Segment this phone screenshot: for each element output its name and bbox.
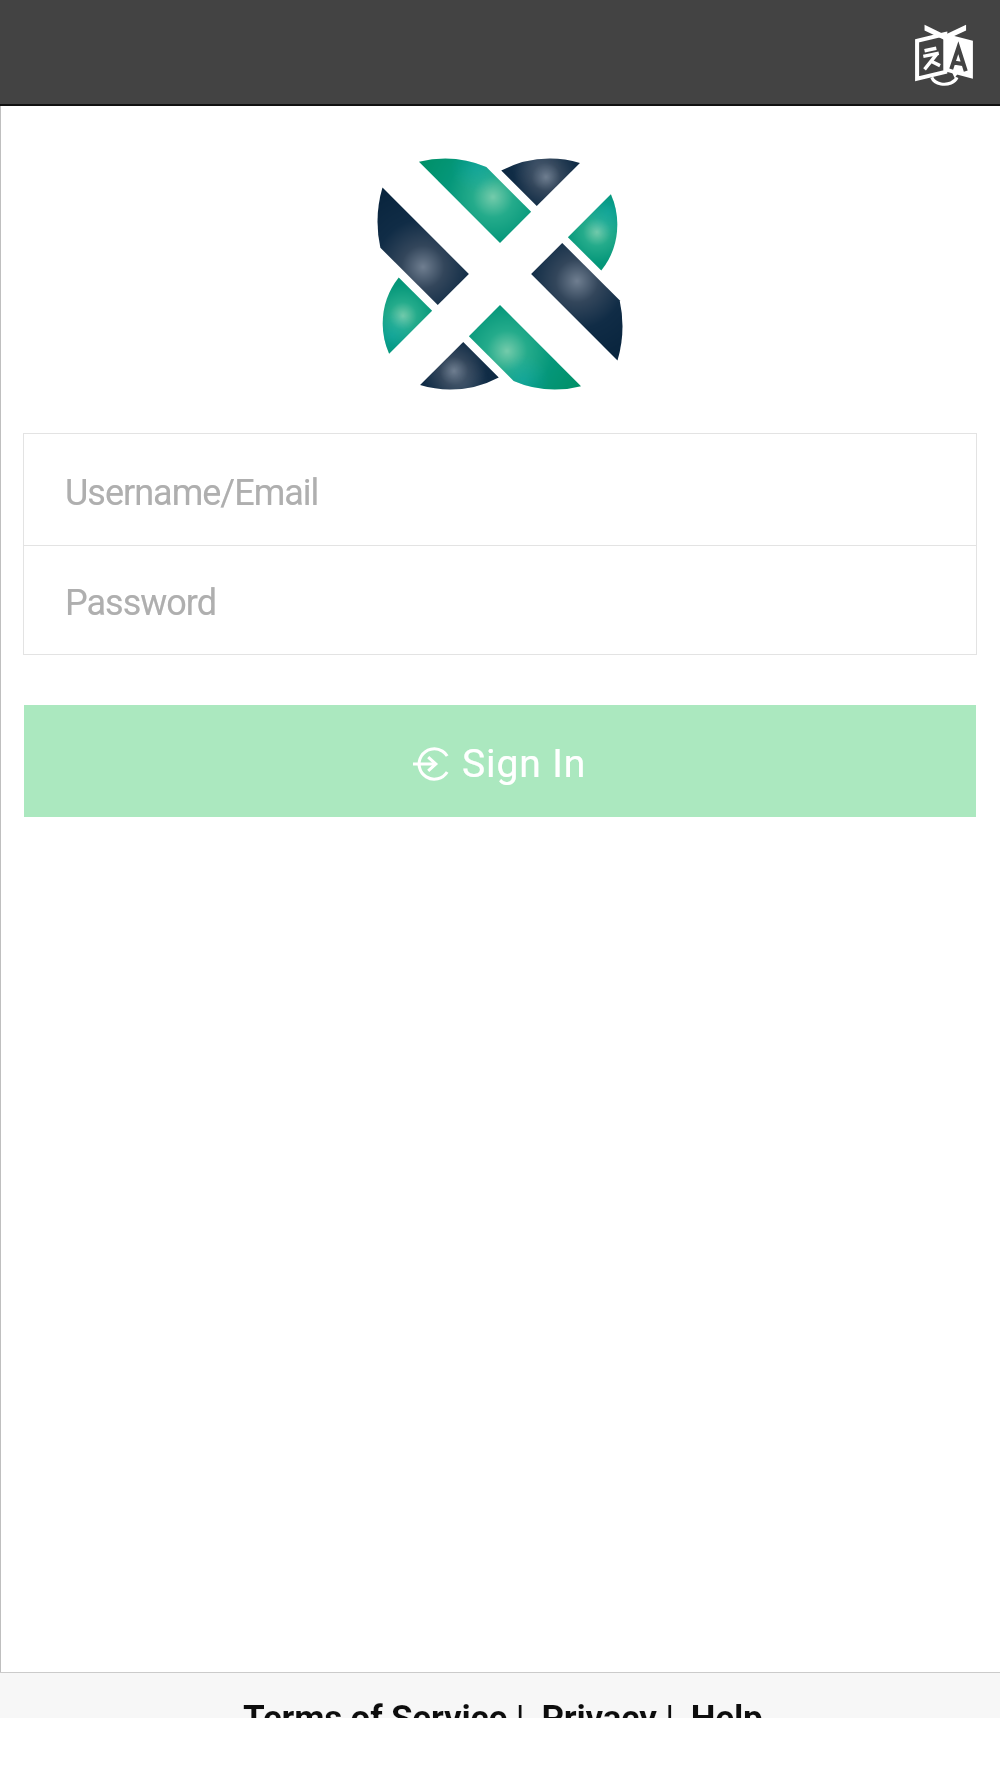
button[interactable]: Sign In: [24, 705, 976, 817]
button[interactable]: Terms of Service | Privacy | Help: [0, 1673, 1000, 1718]
button[interactable]: Password: [23, 546, 977, 654]
button[interactable]: Username/Email: [23, 434, 977, 545]
staticText: Password: [65, 582, 217, 624]
staticText: Sign In: [462, 741, 587, 787]
staticText: Terms of Service | Privacy | Help: [243, 1698, 763, 1718]
button[interactable]: Translate: [906, 13, 984, 91]
staticText: Username/Email: [65, 472, 319, 514]
